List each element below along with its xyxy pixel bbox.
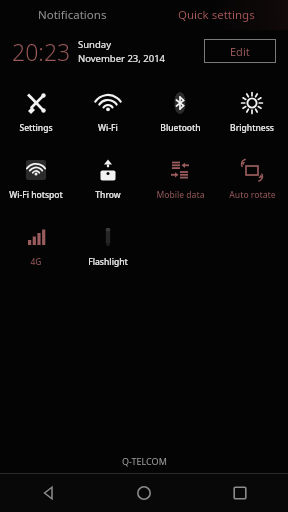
staticText: Mobile data bbox=[156, 189, 205, 201]
staticText: Edit bbox=[230, 44, 250, 59]
staticText: Wi-Fi bbox=[98, 122, 118, 134]
button[interactable]: Notifications bbox=[0, 0, 144, 30]
other: Flashlight bbox=[93, 222, 123, 252]
staticText: Brightness bbox=[230, 122, 274, 134]
button[interactable]: Throw bbox=[72, 149, 144, 216]
button[interactable]: 4G bbox=[0, 216, 72, 283]
button[interactable]: Bluetooth bbox=[144, 82, 216, 149]
button[interactable]: Quick settings bbox=[144, 0, 288, 30]
staticText: Wi-Fi hotspot bbox=[9, 189, 63, 201]
staticText: Sunday bbox=[78, 38, 111, 51]
staticText: Quick settings bbox=[178, 7, 255, 23]
staticText: Auto rotate bbox=[229, 189, 276, 201]
other: Throw bbox=[93, 155, 123, 185]
staticText: Flashlight bbox=[88, 256, 128, 268]
button[interactable]: Back bbox=[0, 474, 96, 512]
other: Settings bbox=[21, 88, 51, 118]
other: Brightness bbox=[237, 88, 267, 118]
staticText: November 23, 2014 bbox=[78, 52, 166, 65]
other: Bluetooth bbox=[165, 88, 195, 118]
staticText: Q-TELCOM bbox=[122, 455, 167, 467]
other: 4G bbox=[21, 222, 51, 252]
button[interactable]: Recents bbox=[192, 474, 288, 512]
staticText: Notifications bbox=[38, 7, 107, 23]
staticText: 20:23 bbox=[12, 36, 71, 67]
staticText: Settings bbox=[19, 122, 53, 134]
other: Wi-Fi hotspot bbox=[21, 155, 51, 185]
other: Auto rotate bbox=[237, 155, 267, 185]
button[interactable]: Wi-Fi bbox=[72, 82, 144, 149]
staticText: Throw bbox=[95, 189, 121, 201]
button[interactable]: Edit bbox=[204, 39, 276, 63]
button[interactable]: Mobile data bbox=[144, 149, 216, 216]
button[interactable]: Flashlight bbox=[72, 216, 144, 283]
other: Wi-Fi bbox=[93, 88, 123, 118]
other: Mobile data bbox=[165, 155, 195, 185]
staticText: 4G bbox=[30, 256, 42, 268]
button[interactable]: Brightness bbox=[216, 82, 288, 149]
button[interactable]: Settings bbox=[0, 82, 72, 149]
staticText: Bluetooth bbox=[160, 122, 201, 134]
button[interactable]: Auto rotate bbox=[216, 149, 288, 216]
button[interactable]: Wi-Fi hotspot bbox=[0, 149, 72, 216]
button[interactable]: Home bbox=[96, 474, 192, 512]
